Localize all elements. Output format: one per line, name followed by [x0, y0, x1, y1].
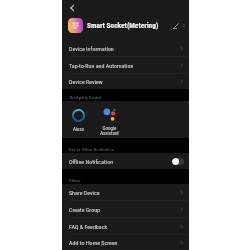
- button[interactable]: Device Review: [62, 74, 189, 89]
- other: Google Assistant: [103, 108, 116, 121]
- staticText: Share Device: [69, 189, 100, 196]
- staticText: Others: [69, 178, 81, 183]
- staticText: Device Information: [69, 45, 114, 52]
- button[interactable]: Create Group: [62, 201, 189, 217]
- button[interactable]: Share Device: [62, 184, 189, 200]
- staticText: Alexa: [73, 126, 84, 132]
- staticText: Tap-to-Run and Automation: [69, 62, 134, 69]
- button[interactable]: Add to Home Screen: [62, 235, 189, 250]
- button[interactable]: Offline Notification: [62, 153, 189, 169]
- staticText: Device Offline Notification: [69, 147, 114, 152]
- staticText: Create Group: [69, 206, 101, 213]
- staticText: Smart Socket(Metering): [87, 21, 159, 30]
- staticText: Third-party Control: [69, 95, 102, 100]
- button[interactable]: Alexa: [66, 101, 90, 132]
- button[interactable]: Smart Socket(Metering): [62, 18, 189, 33]
- staticText: Google Assistant: [100, 125, 119, 136]
- button[interactable]: Google Assistant: [96, 101, 122, 136]
- button[interactable]: Back: [65, 1, 78, 14]
- staticText: Add to Home Screen: [69, 239, 118, 246]
- staticText: Device Review: [69, 78, 103, 85]
- staticText: Offline Notification: [69, 158, 114, 165]
- button[interactable]: FAQ & Feedback: [62, 218, 189, 234]
- button[interactable]: Tap-to-Run and Automation: [62, 57, 189, 73]
- button[interactable]: Device Information: [62, 40, 189, 56]
- staticText: FAQ & Feedback: [69, 223, 108, 230]
- button[interactable]: Edit name: [171, 21, 180, 30]
- other: Alexa: [72, 109, 85, 122]
